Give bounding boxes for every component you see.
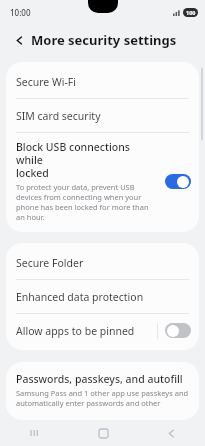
staticText: To protect your data, prevent USB device…	[16, 182, 159, 222]
button[interactable]: Back	[9, 30, 29, 50]
staticText: Passwords, passkeys, and autofill	[16, 372, 183, 386]
staticText: 10:00	[10, 7, 31, 18]
button[interactable]: Back	[137, 420, 205, 446]
staticText: 100	[186, 9, 196, 16]
button[interactable]: Secure Folder	[6, 246, 199, 279]
button[interactable]: Secure Wi-Fi	[6, 65, 199, 98]
button[interactable]: Allow apps to be pinned	[6, 314, 199, 347]
button[interactable]: Home	[69, 420, 137, 446]
button[interactable]: SIM card security	[6, 99, 199, 132]
staticText: Enhanced data protection	[16, 290, 144, 304]
button[interactable]: Enhanced data protection	[6, 280, 199, 313]
staticText: More security settings	[31, 31, 177, 49]
staticText: Block USB connections while locked	[16, 140, 159, 180]
button[interactable]: Recent apps	[0, 420, 69, 446]
staticText: Secure Wi-Fi	[16, 75, 77, 89]
staticText: SIM card security	[16, 109, 101, 123]
button[interactable]	[165, 174, 191, 189]
button[interactable]	[165, 323, 191, 338]
button[interactable]: Block USB connections while locked	[6, 133, 199, 229]
button[interactable]: Passwords, passkeys, and autofill	[6, 365, 199, 417]
staticText: Samsung Pass and 1 other app use passkey…	[16, 388, 189, 410]
staticText: Allow apps to be pinned	[16, 324, 157, 338]
staticText: Secure Folder	[16, 256, 84, 270]
